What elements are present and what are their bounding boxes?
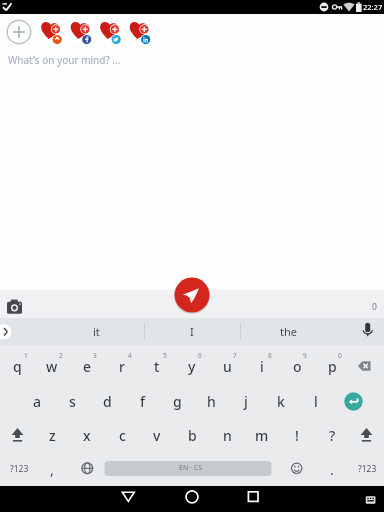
button[interactable]: . [317, 452, 347, 486]
button[interactable]: b [175, 418, 209, 452]
staticText: t [154, 357, 160, 376]
staticText: 6 [198, 351, 202, 360]
staticText: ?123 [358, 463, 377, 475]
staticText: u [223, 357, 232, 376]
button[interactable] [108, 486, 148, 512]
button[interactable]: the [242, 318, 334, 344]
staticText: 9 [303, 351, 307, 360]
button[interactable]: p [315, 349, 349, 383]
button[interactable]: t [140, 349, 174, 383]
button[interactable]: n [210, 418, 244, 452]
button[interactable]: I [145, 318, 239, 344]
button[interactable]: u [210, 349, 244, 383]
staticText: What's on your mind? ... [8, 53, 121, 67]
button[interactable]: f [125, 384, 159, 418]
staticText: 2 [59, 351, 63, 360]
button[interactable] [1, 418, 34, 451]
staticText: m [255, 426, 269, 445]
staticText: d [103, 392, 112, 411]
staticText: k [277, 392, 285, 411]
button[interactable]: a [20, 384, 54, 418]
staticText: 1 [24, 351, 28, 360]
staticText: 7 [233, 351, 237, 360]
staticText: b [188, 426, 197, 445]
button[interactable]: k [264, 384, 298, 418]
button[interactable] [350, 349, 383, 382]
staticText: 4 [128, 351, 132, 360]
staticText: ? [329, 426, 336, 445]
staticText: p [328, 357, 337, 376]
staticText: n [223, 426, 232, 445]
button[interactable] [38, 18, 66, 46]
button[interactable] [350, 418, 383, 451]
button[interactable]: i [245, 349, 279, 383]
button[interactable]: o [280, 349, 314, 383]
button[interactable] [360, 490, 382, 510]
button[interactable]: c [105, 418, 139, 452]
button[interactable]: e [70, 349, 104, 383]
staticText: s [69, 392, 76, 411]
button[interactable] [71, 452, 104, 485]
button[interactable] [175, 278, 210, 313]
staticText: , [50, 460, 54, 479]
staticText: 0 [338, 351, 342, 360]
staticText: ! [295, 426, 299, 445]
staticText: e [83, 357, 92, 376]
button[interactable]: v [140, 418, 174, 452]
button[interactable]: ?123 [350, 452, 384, 486]
staticText: i [260, 357, 264, 376]
staticText: I [190, 324, 194, 339]
button[interactable]: j [229, 384, 263, 418]
button[interactable]: w [35, 349, 69, 383]
button[interactable] [172, 486, 212, 512]
button[interactable] [280, 452, 313, 485]
staticText: h [207, 392, 216, 411]
staticText: g [173, 392, 182, 411]
staticText: c [119, 426, 126, 445]
button[interactable]: z [35, 418, 69, 452]
staticText: x [83, 426, 91, 445]
button[interactable]: d [90, 384, 124, 418]
staticText: ?123 [10, 463, 29, 475]
staticText: q [13, 357, 22, 376]
staticText: y [188, 357, 196, 376]
button[interactable]: ! [280, 418, 314, 452]
staticText: 8 [268, 351, 272, 360]
staticText: z [49, 426, 56, 445]
staticText: . [330, 460, 334, 479]
staticText: o [293, 357, 302, 376]
button[interactable] [7, 20, 31, 44]
staticText: 0 [372, 301, 377, 313]
button[interactable]: g [160, 384, 194, 418]
button[interactable]: r [105, 349, 139, 383]
button[interactable] [352, 318, 384, 345]
staticText: 3 [93, 351, 97, 360]
button[interactable] [97, 18, 125, 46]
button[interactable]: q [0, 349, 34, 383]
staticText: 5 [163, 351, 167, 360]
button[interactable] [127, 18, 155, 46]
button[interactable]: m [245, 418, 279, 452]
button[interactable]: , [37, 452, 67, 486]
button[interactable]: ?123 [2, 452, 36, 486]
button[interactable]: h [194, 384, 228, 418]
button[interactable]: l [299, 384, 333, 418]
staticText: a [33, 392, 42, 411]
button[interactable]: x [70, 418, 104, 452]
button[interactable]: ? [315, 418, 349, 452]
staticText: EN · CS [179, 463, 202, 473]
staticText: it [93, 324, 100, 339]
button[interactable]: s [55, 384, 89, 418]
staticText: l [314, 392, 318, 411]
staticText: j [244, 392, 248, 411]
button[interactable] [233, 486, 273, 512]
button[interactable]: it [49, 318, 143, 344]
button[interactable] [105, 461, 272, 476]
staticText: f [140, 392, 145, 411]
button[interactable]: y [175, 349, 209, 383]
button[interactable] [337, 385, 370, 418]
button[interactable] [68, 18, 96, 46]
staticText: w [46, 357, 58, 376]
button[interactable] [4, 296, 26, 316]
staticText: v [153, 426, 161, 445]
